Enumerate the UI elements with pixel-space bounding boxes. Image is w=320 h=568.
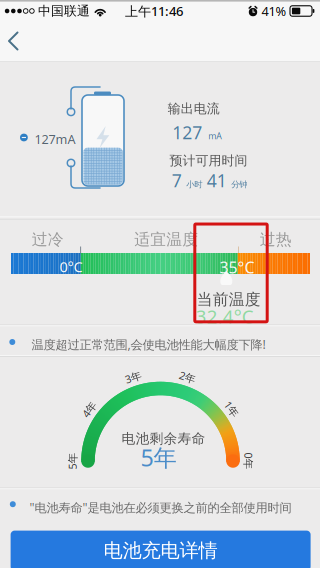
staticText: 过热: [260, 229, 292, 249]
button[interactable]: 返回: [0, 20, 42, 62]
staticText: 5年: [64, 454, 81, 468]
staticText: 上午11:46: [125, 2, 183, 20]
staticText: 41: [207, 168, 227, 192]
staticText: 温度超过正常范围,会使电池性能大幅度下降!: [31, 336, 265, 353]
staticText: 分钟: [231, 179, 247, 190]
staticText: 41%: [261, 2, 286, 20]
staticText: 35°C: [219, 256, 254, 278]
staticText: 电池剩余寿命: [121, 430, 205, 447]
staticText: 5年: [140, 441, 176, 473]
staticText: 0°C: [59, 256, 82, 276]
staticText: 3年: [125, 370, 142, 384]
staticText: 小时: [186, 179, 202, 190]
staticText: 中国联通: [38, 3, 90, 19]
staticText: 预计可用时间: [169, 152, 247, 169]
staticText: 当前温度: [197, 289, 261, 309]
button[interactable]: 电池充电详情: [11, 531, 311, 568]
staticText: 2年: [179, 370, 196, 384]
staticText: 过冷: [32, 229, 64, 249]
staticText: 127: [172, 120, 202, 144]
staticText: 127mA: [35, 130, 76, 148]
staticText: 32.4°C: [196, 303, 254, 329]
staticText: "电池寿命"是电池在必须更换之前的全部使用时间: [29, 499, 291, 516]
staticText: 0年: [240, 454, 257, 468]
staticText: 电池充电详情: [104, 538, 218, 563]
staticText: mA: [208, 130, 222, 142]
staticText: 输出电流: [168, 100, 220, 117]
staticText: 4年: [81, 402, 98, 416]
staticText: 适宜温度: [134, 229, 198, 249]
staticText: 7: [172, 168, 182, 192]
staticText: 1年: [223, 402, 240, 416]
